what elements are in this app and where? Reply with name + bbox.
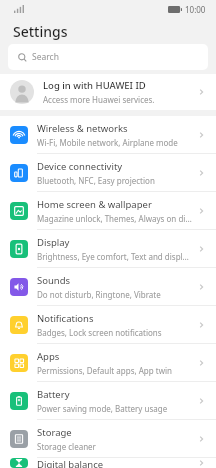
button[interactable]: Notifications (0, 306, 216, 343)
staticText: Do not disturb, Ringtone, Vibrate (37, 289, 161, 300)
staticText: Settings (13, 22, 68, 41)
staticText: Brightness, Eye comfort, Text and displa… (37, 251, 192, 262)
staticText: Display (37, 236, 70, 249)
staticText: 10:00 (185, 4, 206, 15)
button[interactable]: Search (8, 44, 208, 70)
button[interactable]: Device connectivity (0, 154, 216, 191)
button[interactable]: Sounds (0, 268, 216, 305)
staticText: Magazine unlock, Themes, Always on displ… (37, 213, 192, 224)
staticText: Wireless & networks (37, 122, 128, 135)
button[interactable]: Storage (0, 420, 216, 457)
button[interactable]: Digital balance (0, 458, 216, 468)
staticText: Log in with HUAWEI ID (43, 79, 146, 92)
staticText: Notifications (37, 312, 94, 325)
staticText: Digital balance (37, 458, 104, 468)
staticText: Search (32, 51, 59, 63)
staticText: Sounds (37, 274, 71, 287)
staticText: Bluetooth, NFC, Easy projection (37, 175, 155, 186)
staticText: Device connectivity (37, 160, 123, 173)
staticText: Permissions, Default apps, App twin (37, 365, 172, 376)
staticText: Storage (37, 426, 72, 439)
staticText: Home screen & wallpaper (37, 198, 152, 211)
staticText: Battery (37, 388, 70, 401)
button[interactable]: Display (0, 230, 216, 267)
staticText: Badges, Lock screen notifications (37, 327, 162, 338)
staticText: Power saving mode, Battery usage (37, 403, 168, 414)
button[interactable]: Wireless & networks (0, 116, 216, 153)
button[interactable]: Battery (0, 382, 216, 419)
button[interactable]: Home screen & wallpaper (0, 192, 216, 229)
staticText: Apps (37, 350, 60, 363)
staticText: Access more Huawei services. (43, 94, 155, 105)
staticText: Storage cleaner (37, 441, 96, 452)
staticText: Wi-Fi, Mobile network, Airplane mode (37, 137, 178, 148)
button[interactable]: Apps (0, 344, 216, 381)
button[interactable]: Log in with HUAWEI ID (0, 74, 216, 110)
